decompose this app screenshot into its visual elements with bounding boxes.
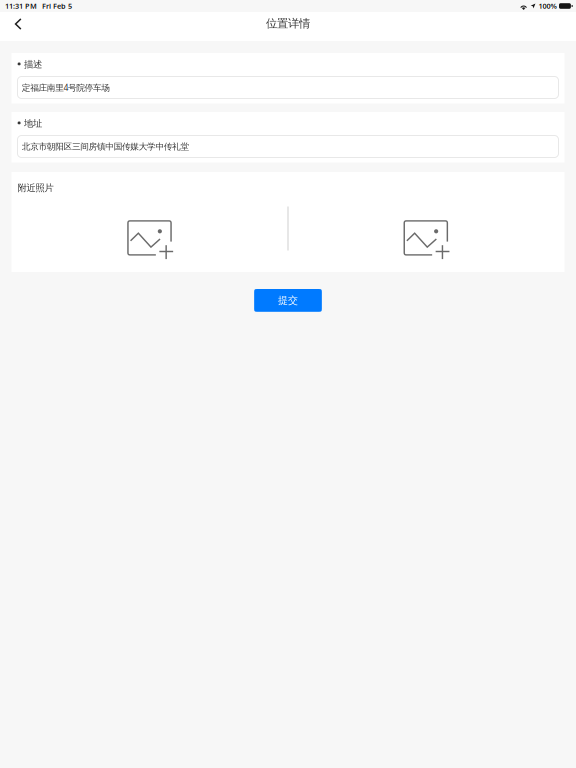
button[interactable]: Add photo xyxy=(17,208,288,262)
button[interactable]: 提交 xyxy=(254,289,322,312)
staticText: 描述 xyxy=(24,59,42,70)
staticText: 100% xyxy=(539,1,557,11)
staticText: 附近照片 xyxy=(17,182,53,194)
staticText: 11:31 PM xyxy=(5,1,37,11)
staticText: 地址 xyxy=(24,118,42,129)
staticText: 定福庄南里4号院停车场 xyxy=(22,82,110,93)
staticText: 位置详情 xyxy=(266,16,310,31)
staticText: 北京市朝阳区三间房镇中国传媒大学中传礼堂 xyxy=(22,141,189,152)
staticText: 提交 xyxy=(278,294,298,307)
button[interactable]: Add photo xyxy=(288,208,558,262)
staticText: Fri Feb 5 xyxy=(42,1,72,11)
button[interactable]: Back xyxy=(4,12,30,41)
